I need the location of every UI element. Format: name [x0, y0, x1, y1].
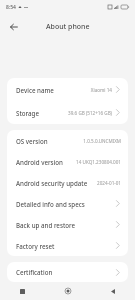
button[interactable]: Back	[90, 282, 135, 300]
staticText: Device name	[16, 86, 54, 94]
staticText: OS version	[16, 137, 48, 145]
button[interactable]: Home	[45, 282, 90, 300]
staticText: Storage	[16, 109, 39, 117]
button[interactable]: Recents	[0, 282, 45, 300]
staticText: 8:54	[6, 4, 16, 11]
button[interactable]: Back	[6, 19, 22, 35]
staticText: Back up and restore	[16, 221, 76, 229]
button[interactable]: Android security update	[7, 172, 128, 193]
staticText: 14 UKQ1.230804.001	[76, 159, 121, 165]
staticText: About phone	[46, 22, 90, 32]
staticText: Certification	[16, 268, 53, 276]
button[interactable]: Storage	[7, 101, 128, 124]
button[interactable]: Factory reset	[7, 235, 128, 256]
staticText: 2024-01-01	[97, 180, 121, 186]
button[interactable]: Android version	[7, 151, 128, 172]
staticText: 39.6 GB (512+16 GB)	[68, 110, 112, 116]
staticText: 1.0.5.0.UNCMIXM	[83, 138, 121, 144]
button[interactable]: Back up and restore	[7, 214, 128, 235]
staticText: Android version	[16, 158, 63, 166]
staticText: Detailed info and specs	[16, 200, 85, 208]
staticText: Xiaomi 14	[90, 87, 112, 93]
button[interactable]: Certification	[7, 262, 128, 282]
button[interactable]: OS version	[7, 130, 128, 151]
button[interactable]: Detailed info and specs	[7, 193, 128, 214]
staticText: Android security update	[16, 179, 88, 187]
staticText: Factory reset	[16, 242, 55, 250]
button[interactable]: Device name	[7, 78, 128, 101]
